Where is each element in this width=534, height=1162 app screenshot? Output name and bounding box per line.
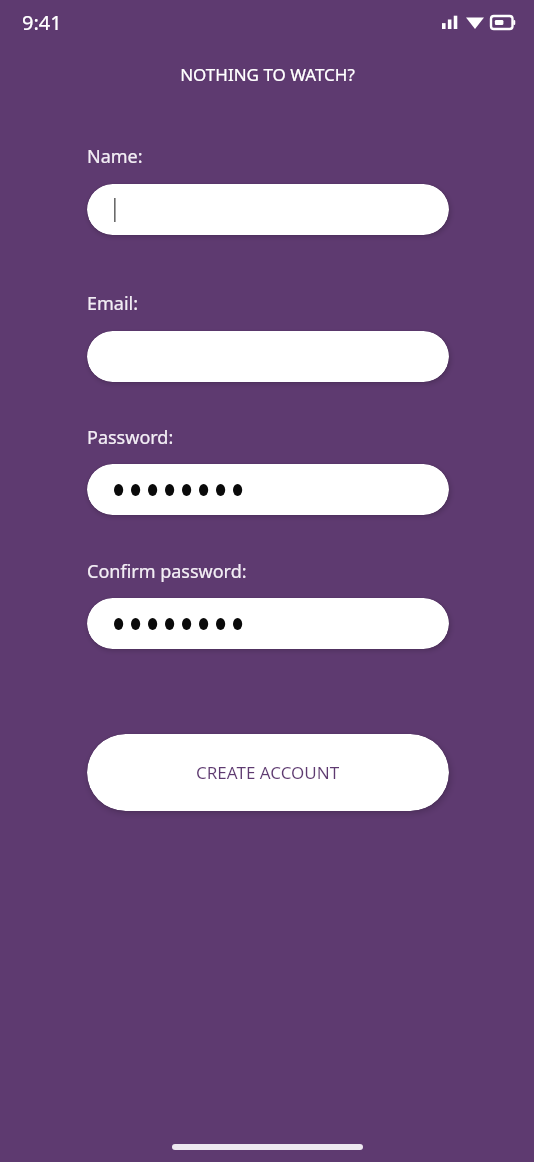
staticText: Confirm password: [87, 559, 247, 584]
button[interactable] [87, 464, 449, 515]
staticText: CREATE ACCOUNT [196, 761, 340, 784]
staticText: NOTHING TO WATCH? [180, 63, 355, 86]
staticText: Email: [87, 291, 139, 316]
staticText: Password: [87, 425, 174, 450]
button[interactable] [87, 331, 449, 382]
staticText: 9:41 [22, 9, 62, 36]
button[interactable] [87, 184, 449, 235]
button[interactable] [87, 598, 449, 649]
staticText: Name: [87, 144, 143, 169]
button[interactable]: CREATE ACCOUNT [87, 734, 449, 811]
